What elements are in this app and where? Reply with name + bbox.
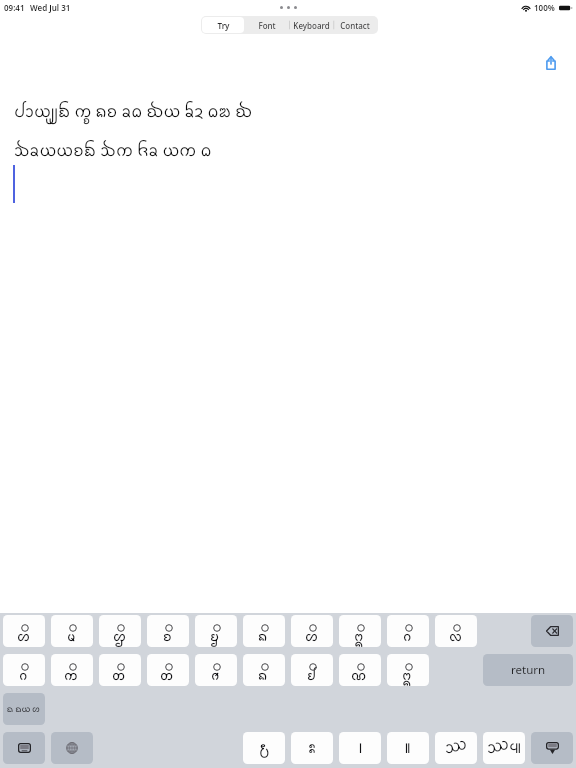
button[interactable]: return bbox=[483, 654, 573, 686]
staticText: ᪬ bbox=[445, 736, 467, 761]
staticText: ᨮ bbox=[210, 627, 220, 647]
staticText: ᨦ bbox=[258, 666, 268, 686]
button[interactable]: Contact bbox=[334, 17, 376, 33]
staticText: ᩆ bbox=[211, 666, 220, 686]
button[interactable]: Hide keyboard bbox=[531, 732, 573, 764]
button[interactable]: ᨲ bbox=[147, 654, 189, 686]
button[interactable]: Backspace bbox=[531, 615, 573, 647]
button[interactable]: Share bbox=[540, 52, 562, 74]
staticText: ᨨᨡᨿᨿᨧᨺ ᨨᨠ ᨪᨡ ᨿᨠ ᨵ bbox=[14, 139, 212, 164]
button[interactable]: ᨧ bbox=[147, 615, 189, 647]
button[interactable]: ᩃ bbox=[435, 615, 477, 647]
staticText: ᨳ ᨳᨿ ᩉ bbox=[7, 703, 41, 716]
button[interactable]: ᨦ bbox=[243, 615, 285, 647]
staticText: ᨱ bbox=[351, 666, 367, 686]
staticText: ᩍ bbox=[402, 666, 412, 686]
staticText: ᩡ bbox=[308, 736, 316, 761]
staticText: ᩀ bbox=[307, 666, 316, 686]
staticText: ᨸᩣᨿ᩠ᨿ᩠ᨿᨺ ᨠ᩠ᨧ ᨦᨧ ᨡᨵ ᨫᨿ ᨢᨯ ᨵᨰ ᨫ bbox=[14, 100, 253, 125]
staticText: return bbox=[511, 662, 546, 678]
staticText: ᪩ bbox=[404, 736, 412, 761]
button[interactable]: Keyboard settings bbox=[3, 732, 45, 764]
staticText: Font bbox=[258, 20, 276, 31]
staticText: ᨣ bbox=[19, 666, 28, 686]
staticText: ᩉ bbox=[17, 627, 30, 647]
staticText: ᨧ bbox=[163, 627, 172, 647]
button[interactable]: ᪬᪫ bbox=[483, 732, 525, 764]
button[interactable]: ᨦ bbox=[243, 654, 285, 686]
staticText: ᪨ bbox=[358, 736, 363, 761]
staticText: 100% bbox=[534, 2, 555, 13]
staticText: ᨦ bbox=[258, 627, 268, 647]
button[interactable]: ᨾ bbox=[51, 615, 93, 647]
button[interactable]: ᩡ bbox=[291, 732, 333, 764]
button[interactable]: ᨣ bbox=[387, 615, 429, 647]
staticText: ᨾ bbox=[67, 627, 76, 647]
button[interactable]: ᨲ bbox=[99, 654, 141, 686]
button[interactable]: ᩆ bbox=[195, 654, 237, 686]
button[interactable]: Font bbox=[246, 17, 288, 33]
staticText: Try bbox=[217, 20, 230, 31]
button[interactable]: ᩌ bbox=[99, 615, 141, 647]
button[interactable]: ᨣ bbox=[3, 654, 45, 686]
staticText: Contact bbox=[340, 20, 370, 31]
button[interactable]: ᨮ bbox=[195, 615, 237, 647]
staticText: ᨲ bbox=[160, 666, 174, 686]
staticText: 09:41 bbox=[4, 2, 25, 13]
staticText: ᩃ bbox=[449, 627, 462, 647]
button[interactable]: Keyboard bbox=[290, 17, 332, 33]
button[interactable]: ᨳ ᨳᨿ ᩉ bbox=[3, 693, 45, 725]
button[interactable]: Try bbox=[202, 17, 244, 33]
staticText: ᨣ bbox=[403, 627, 412, 647]
button[interactable]: Change language bbox=[51, 732, 93, 764]
staticText: ᨲ bbox=[112, 666, 126, 686]
button[interactable]: ᩉ bbox=[3, 615, 45, 647]
staticText: ᩉ bbox=[305, 627, 318, 647]
button[interactable]: ᨱ bbox=[339, 654, 381, 686]
button[interactable]: ᨠ bbox=[51, 654, 93, 686]
button[interactable]: ᩉ bbox=[291, 615, 333, 647]
button[interactable]: ᪩ bbox=[387, 732, 429, 764]
button[interactable]: ᪭ bbox=[243, 732, 285, 764]
staticText: ᨠ bbox=[64, 666, 78, 686]
button[interactable]: ᩀ bbox=[291, 654, 333, 686]
staticText: ᪬᪫ bbox=[487, 736, 522, 761]
button[interactable]: ᪨ bbox=[339, 732, 381, 764]
staticText: ᩌ bbox=[113, 627, 126, 647]
staticText: ᪭ bbox=[259, 736, 270, 761]
button[interactable]: ᩍ bbox=[387, 654, 429, 686]
staticText: Wed Jul 31 bbox=[30, 2, 71, 13]
staticText: ᩍ bbox=[354, 627, 364, 647]
button[interactable]: ᪬ bbox=[435, 732, 477, 764]
staticText: Keyboard bbox=[293, 20, 330, 31]
button[interactable]: ᩍ bbox=[339, 615, 381, 647]
